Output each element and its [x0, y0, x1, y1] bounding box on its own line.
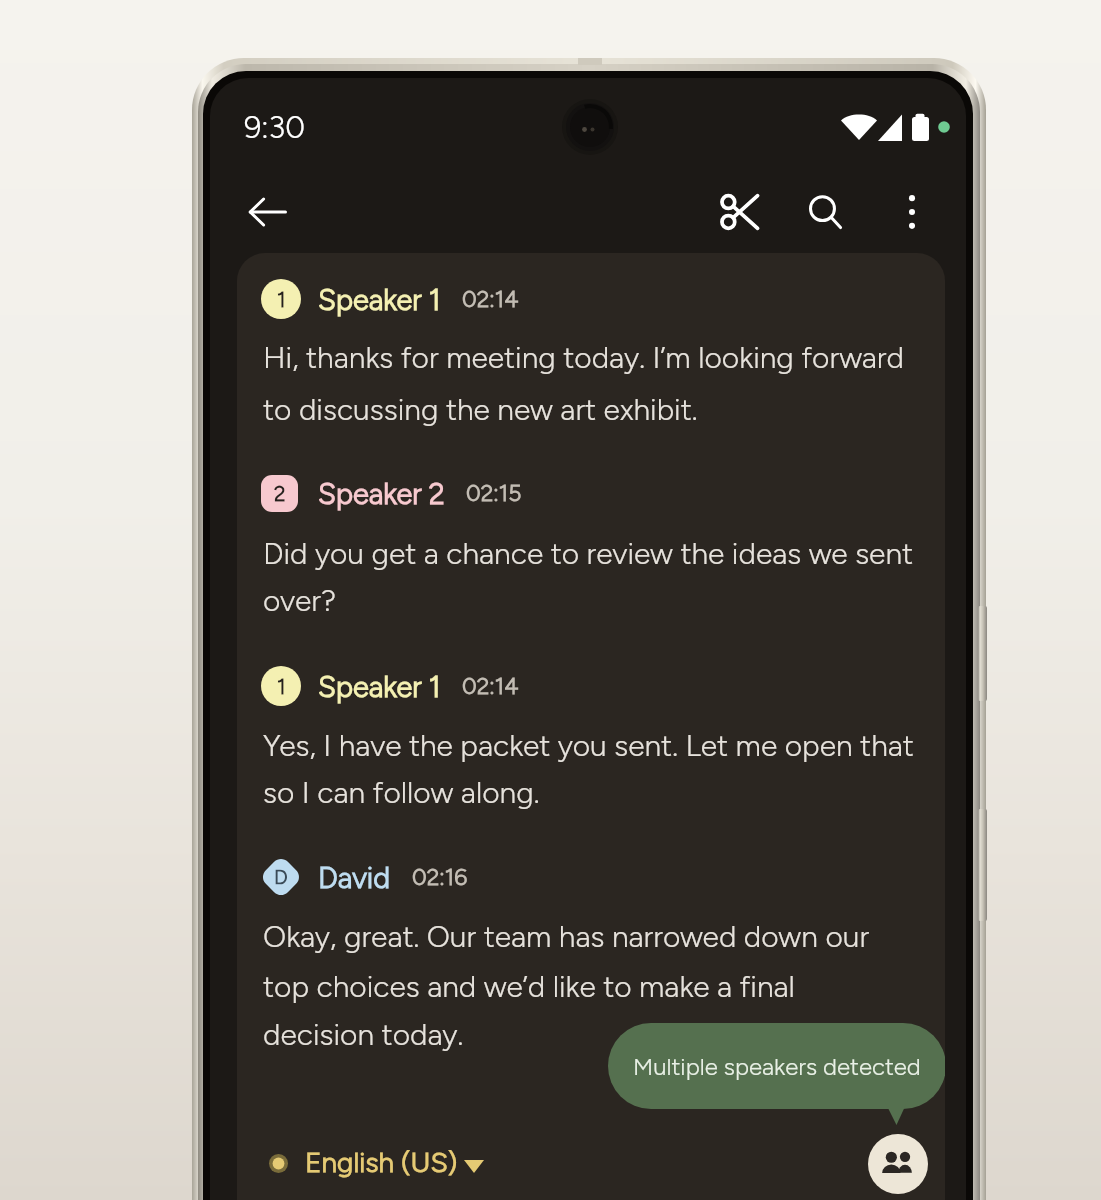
staticText: decision today.: [263, 1016, 464, 1052]
staticText: top choices and we’d like to make a fina…: [263, 968, 795, 1004]
button[interactable]: 1: [261, 660, 519, 712]
button[interactable]: D: [259, 851, 468, 903]
staticText: Okay, great. Our team has narrowed down …: [263, 918, 870, 954]
staticText: 02:14: [462, 285, 519, 313]
button[interactable]: Trim clip: [705, 177, 775, 247]
staticText: 1: [277, 674, 286, 699]
staticText: 02:15: [466, 479, 522, 507]
staticText: 9:30: [244, 109, 306, 146]
staticText: Speaker 2: [318, 476, 445, 511]
staticText: Hi, thanks for meeting today. I’m lookin…: [263, 339, 904, 375]
staticText: 02:14: [462, 672, 519, 700]
button[interactable]: Multiple speakers detected: [608, 1023, 945, 1109]
button[interactable]: 2: [261, 467, 522, 519]
button[interactable]: Speaker labels: [868, 1134, 928, 1194]
staticText: 2: [274, 481, 286, 506]
staticText: David: [318, 860, 391, 895]
staticText: English (US): [305, 1145, 458, 1179]
staticText: so I can follow along.: [263, 774, 540, 810]
staticText: Multiple speakers detected: [633, 1052, 921, 1081]
staticText: Speaker 1: [318, 282, 441, 317]
staticText: 1: [277, 287, 286, 312]
staticText: Did you get a chance to review the ideas…: [263, 535, 914, 571]
staticText: 02:16: [412, 863, 468, 891]
button[interactable]: Back: [232, 177, 302, 247]
button[interactable]: English (US): [262, 1135, 494, 1191]
button[interactable]: 1: [261, 273, 519, 325]
staticText: Yes, I have the packet you sent. Let me …: [263, 727, 914, 763]
staticText: D: [274, 865, 288, 889]
button[interactable]: More options: [877, 177, 947, 247]
staticText: Speaker 1: [318, 669, 441, 704]
staticText: over?: [263, 582, 336, 618]
button[interactable]: Search: [790, 177, 860, 247]
staticText: to discussing the new art exhibit.: [263, 391, 698, 427]
